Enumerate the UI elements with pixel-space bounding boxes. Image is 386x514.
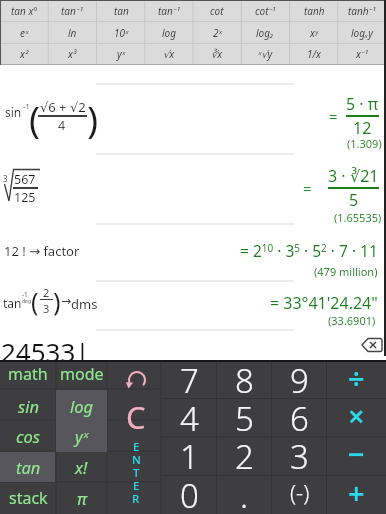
staticText: π [77,487,87,509]
button[interactable]: logₓy [338,22,386,44]
staticText: x! [75,456,88,478]
button[interactable]: . [217,473,272,511]
button[interactable]: cot [193,0,241,22]
button[interactable]: math [0,358,56,389]
staticText: + [348,473,365,511]
staticText: 0 [180,473,199,511]
button[interactable]: tan x° [0,0,48,22]
button[interactable]: + [327,473,386,511]
staticText: sin [5,104,22,120]
button[interactable]: ÷ [327,358,386,396]
staticText: ln [68,26,77,40]
staticText: 4 [58,117,66,134]
staticText: N [132,452,141,465]
button[interactable]: log₂ [241,22,289,44]
button[interactable]: 6 [272,396,327,434]
button[interactable]: ˣ√y [241,43,289,65]
staticText: 12 [353,117,372,139]
button[interactable]: tan [97,0,145,22]
staticText: √6 + √2 [40,98,86,116]
staticText: ( [29,93,41,143]
staticText: 9 [290,358,309,396]
button[interactable]: stack [0,482,56,513]
button[interactable]: × [327,396,386,434]
staticText: 3 · [328,165,350,187]
button[interactable]: yˣ [97,43,145,65]
button[interactable]: x! [56,451,107,482]
staticText: − [348,434,365,472]
staticText: x³ [68,47,77,61]
button[interactable]: 7 [162,358,217,396]
button[interactable]: √x [145,43,193,65]
staticText: xʸ [310,26,318,40]
staticText: 5 [349,189,359,211]
button[interactable]: 2ˣ [193,22,241,44]
staticText: 12 ! → factor [4,242,80,260]
staticText: (1.65535) [334,210,382,225]
button[interactable] [360,337,384,353]
staticText: (479 million) [314,264,378,279]
staticText: ÷ [348,358,365,396]
button[interactable]: x⁻¹ [338,43,386,65]
staticText: = 210 · 35 · 52 · 7 · 11 [240,240,378,261]
staticText: T [133,465,140,478]
button[interactable]: ∛x [193,43,241,65]
button[interactable]: log [145,22,193,44]
button[interactable]: N [126,452,146,465]
staticText: E [133,439,140,452]
staticText: tan [3,295,22,311]
button[interactable]: tanh⁻¹ [338,0,386,22]
staticText: 125 [14,189,36,206]
staticText: 24533| [1,334,90,369]
button[interactable]: 2 [217,434,272,472]
button[interactable]: 1 [162,434,217,472]
button[interactable]: 10ˣ [97,22,145,44]
button[interactable]: − [327,434,386,472]
button[interactable]: 3 [272,434,327,472]
staticText: 1/x [307,47,321,61]
button[interactable]: xʸ [290,22,338,44]
button[interactable]: 8 [217,358,272,396]
staticText: -1 [23,101,30,111]
button[interactable]: cot⁻¹ [241,0,289,22]
staticText: cos [16,425,40,447]
button[interactable]: π [56,482,107,513]
button[interactable]: 9 [272,358,327,396]
staticText: mode [60,363,104,385]
button[interactable]: yˣ [56,420,107,451]
staticText: log [70,395,94,417]
button[interactable]: 4 [162,396,217,434]
button[interactable]: tanh [290,0,338,22]
button[interactable]: mode [56,358,107,389]
button[interactable]: tan [0,451,56,482]
button[interactable]: x³ [48,43,96,65]
button[interactable]: E [126,439,146,452]
staticText: x⁻¹ [356,47,368,61]
button[interactable]: 1/x [290,43,338,65]
staticText: 2ˣ [213,26,222,40]
staticText: R [132,491,140,504]
staticText: 3 [3,173,8,184]
button[interactable]: ln [48,22,96,44]
staticText: = 33°41'24.24" [270,292,378,314]
staticText: ˣ√y [258,47,273,61]
button[interactable]: R [126,491,146,504]
staticText: (1.309) [347,136,382,151]
button[interactable]: C [111,396,161,436]
button[interactable]: sin [0,390,56,421]
button[interactable]: (-) [272,473,327,511]
button[interactable]: T [126,465,146,478]
button[interactable]: x² [0,43,48,65]
button[interactable]: 5 [217,396,272,434]
button[interactable]: E [126,478,146,491]
button[interactable]: 0 [162,473,217,511]
staticText: stack [9,487,48,509]
button[interactable]: tan⁻¹ [48,0,96,22]
staticText: = [303,178,328,198]
button[interactable] [125,368,150,393]
button[interactable]: cos [0,420,56,451]
button[interactable]: log [56,390,107,421]
staticText: tan⁻¹ [158,4,180,18]
button[interactable]: eˣ [0,22,48,44]
button[interactable]: tan⁻¹ [145,0,193,22]
